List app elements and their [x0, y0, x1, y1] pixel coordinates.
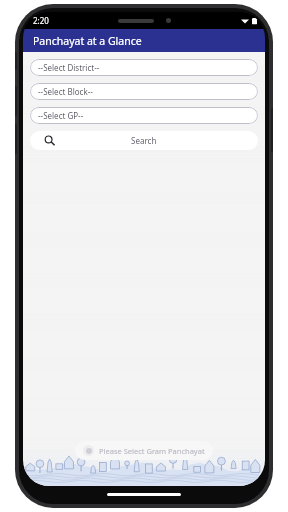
staticText: --Select Block-- [38, 86, 93, 97]
button[interactable]: Panchayat at a Glance [23, 29, 265, 52]
staticText: Please Select Gram Panchayat [99, 446, 205, 456]
staticText: 2:20 [33, 15, 49, 26]
button[interactable]: --Select District-- [30, 59, 258, 76]
button[interactable]: Search [30, 131, 258, 150]
staticText: --Select GP-- [38, 110, 84, 121]
button[interactable]: --Select GP-- [30, 107, 258, 124]
other: Search [44, 135, 55, 146]
staticText: Panchayat at a Glance [33, 34, 142, 48]
staticText: Search [131, 135, 157, 146]
button[interactable]: --Select Block-- [30, 83, 258, 100]
staticText: --Select District-- [38, 62, 100, 73]
